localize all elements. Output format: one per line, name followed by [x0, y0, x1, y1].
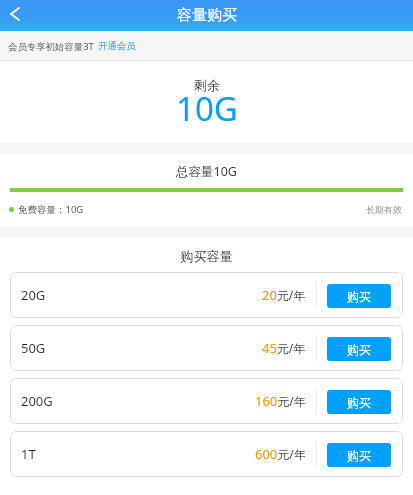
staticText: 购买 [347, 342, 371, 357]
staticText: 160元/年 [255, 392, 306, 410]
staticText: 购买 [347, 448, 371, 463]
button[interactable]: 购买 [327, 443, 391, 467]
staticText: 长期有效 [366, 204, 402, 215]
staticText: 200G [21, 392, 53, 410]
button[interactable]: 购买 [327, 390, 391, 414]
staticText: 容量购买 [177, 6, 237, 25]
staticText: 600元/年 [255, 445, 306, 463]
staticText: 购买容量 [0, 248, 413, 264]
button[interactable]: 开通会员 [98, 36, 136, 56]
button[interactable]: 购买 [327, 337, 391, 361]
staticText: 20元/年 [262, 286, 306, 304]
staticText: 1T [21, 445, 36, 463]
button[interactable]: 购买 [327, 284, 391, 308]
button[interactable]: 20G [10, 272, 403, 318]
staticText: 50G [21, 339, 46, 357]
button[interactable]: 1T [10, 431, 403, 477]
staticText: 20G [21, 286, 46, 304]
button[interactable]: 200G [10, 378, 403, 424]
staticText: 10G [176, 86, 238, 131]
staticText: 总容量10G [0, 163, 413, 180]
staticText: 45元/年 [262, 339, 306, 357]
staticText: 会员专享初始容量3T [8, 40, 94, 53]
staticText: 购买 [347, 395, 371, 410]
staticText: 免费容量：10G [18, 203, 84, 216]
staticText: 开通会员 [98, 40, 136, 52]
button[interactable]: Back [0, 0, 28, 27]
button[interactable]: 50G [10, 325, 403, 371]
staticText: 购买 [347, 289, 371, 304]
staticText: 剩余 [194, 77, 220, 93]
